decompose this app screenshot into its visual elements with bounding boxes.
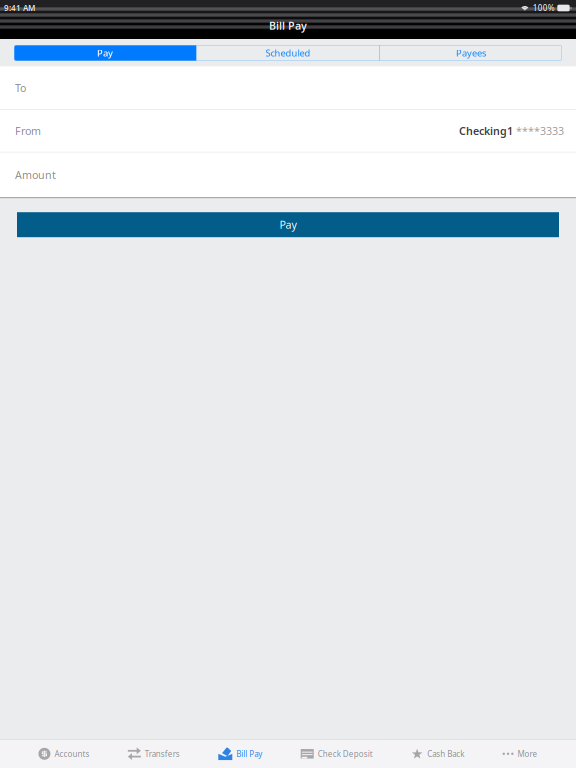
button[interactable]: Bill Pay bbox=[218, 740, 262, 768]
staticText: Accounts bbox=[54, 748, 89, 759]
staticText: To bbox=[15, 81, 26, 95]
button[interactable]: Amount bbox=[0, 152, 576, 197]
button[interactable]: Accounts bbox=[38, 740, 89, 768]
staticText: Pay bbox=[97, 47, 113, 59]
button[interactable]: To bbox=[0, 66, 576, 109]
staticText: Pay bbox=[279, 218, 296, 232]
button[interactable]: From bbox=[0, 110, 576, 152]
button[interactable]: Pay bbox=[17, 212, 559, 237]
staticText: Bill Pay bbox=[236, 748, 262, 759]
staticText: From bbox=[15, 124, 41, 138]
staticText: Check Deposit bbox=[318, 748, 373, 759]
staticText: More bbox=[518, 748, 538, 759]
staticText: ****3333 bbox=[513, 124, 564, 138]
button[interactable]: Cash Back bbox=[411, 740, 464, 768]
button[interactable]: Payees bbox=[380, 45, 562, 61]
button[interactable]: Transfers bbox=[128, 740, 180, 768]
staticText: Amount bbox=[15, 168, 56, 182]
staticText: Scheduled bbox=[265, 47, 310, 59]
staticText: Bill Pay bbox=[269, 18, 307, 33]
staticText: Transfers bbox=[145, 748, 180, 759]
staticText: 100% bbox=[533, 3, 555, 13]
staticText: Payees bbox=[456, 47, 486, 59]
staticText: Checking1 bbox=[459, 124, 513, 138]
button[interactable]: Check Deposit bbox=[301, 740, 373, 768]
button[interactable]: More bbox=[503, 740, 538, 768]
staticText: 9:41 AM bbox=[4, 3, 35, 13]
staticText: Cash Back bbox=[427, 748, 464, 759]
button[interactable]: Pay bbox=[14, 45, 196, 61]
button[interactable]: Scheduled bbox=[197, 45, 379, 61]
